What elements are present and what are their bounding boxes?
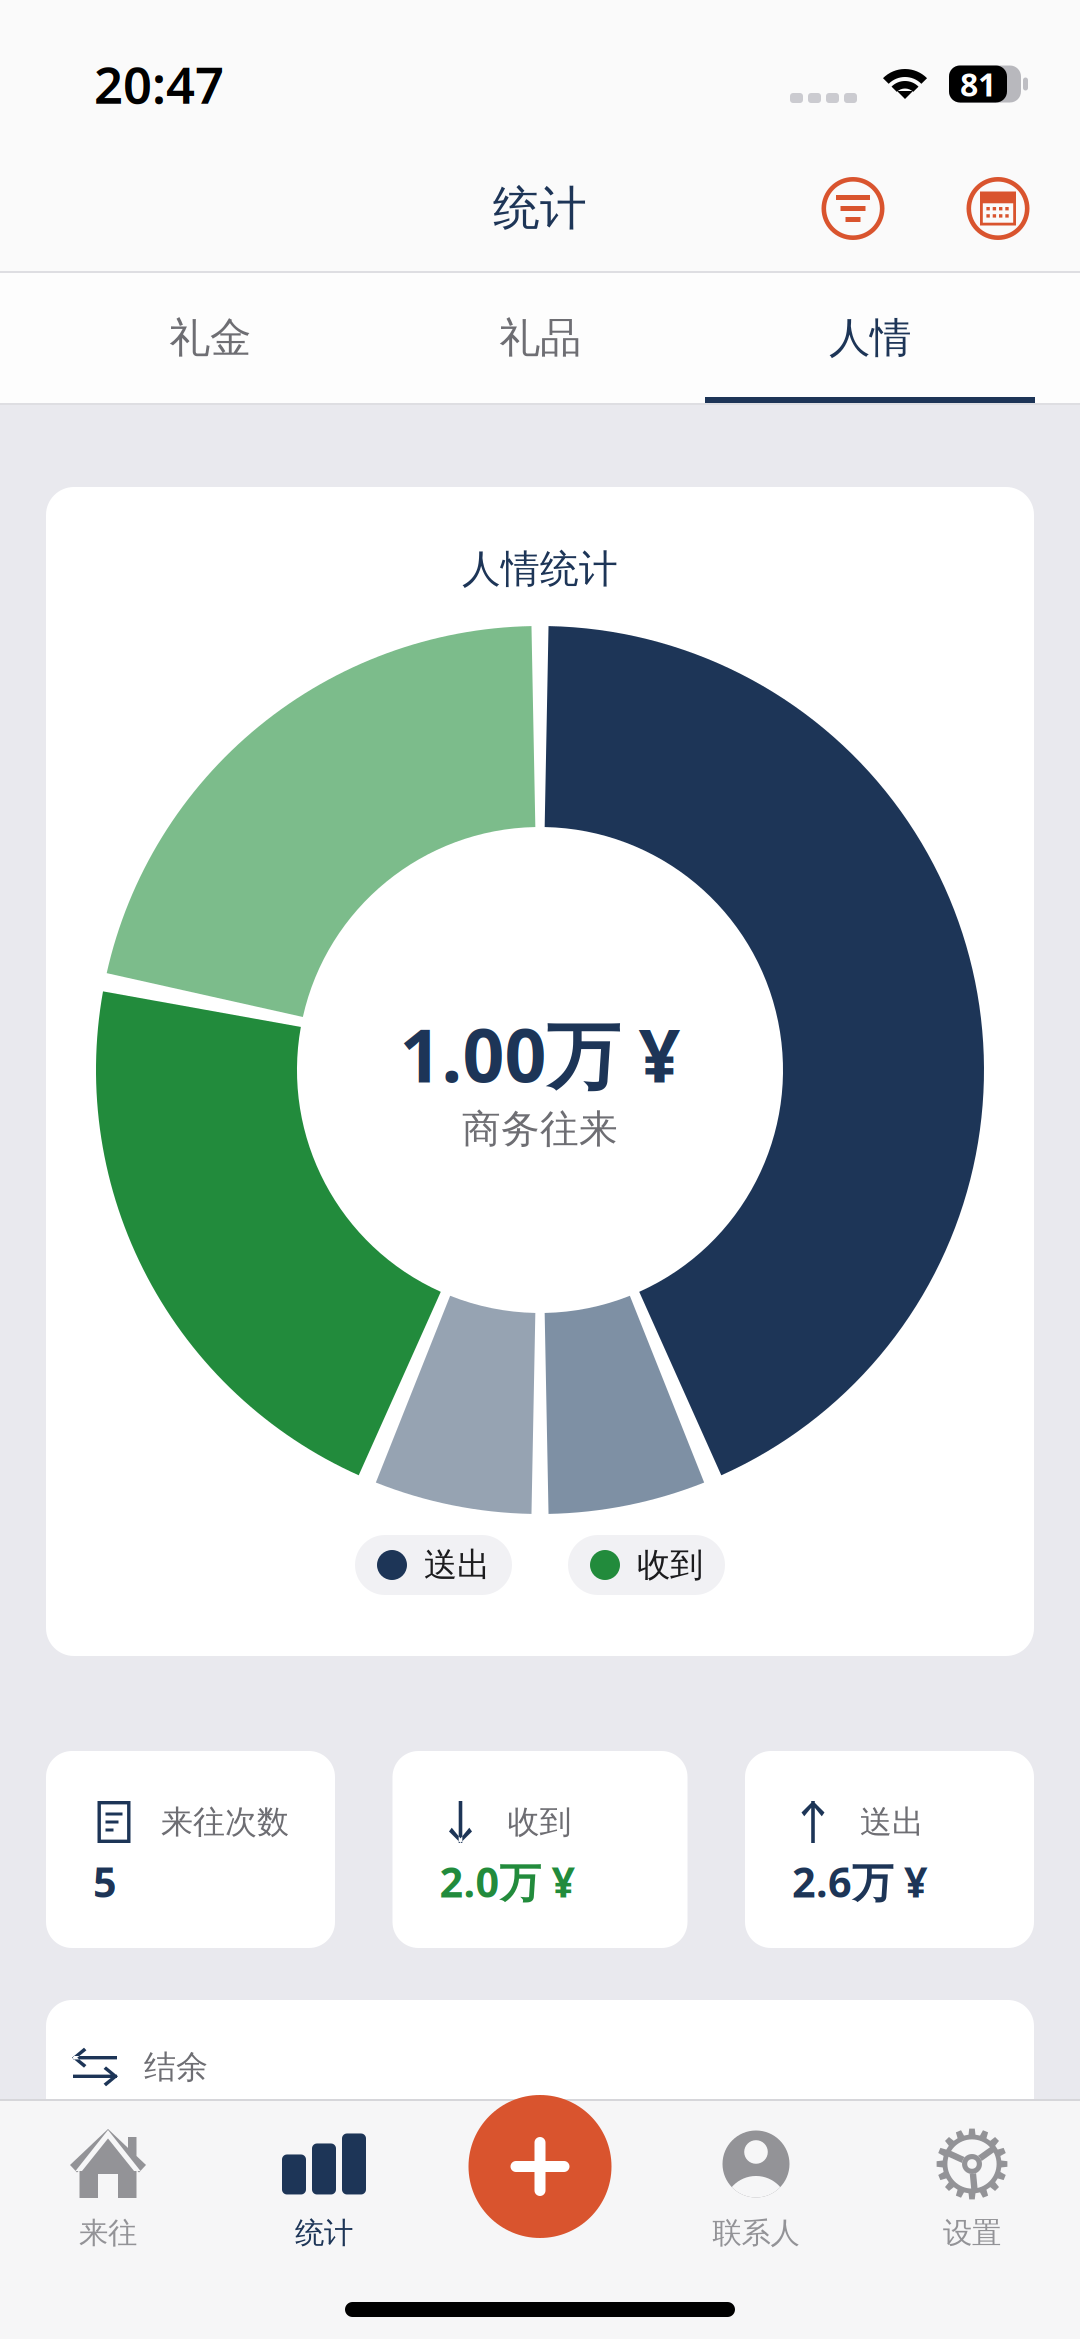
staticText: 1.00万 ¥	[399, 1005, 680, 1103]
staticText: 联系人	[712, 2215, 799, 2251]
staticText: 2.0万 ¥	[439, 1854, 575, 1909]
staticText: 结余	[144, 2047, 208, 2087]
staticText: 来往	[79, 2215, 137, 2251]
button[interactable]: 设置	[864, 2119, 1080, 2259]
staticText: 统计	[295, 2215, 353, 2251]
button[interactable]: 礼金	[45, 273, 375, 403]
button[interactable]: 来往次数	[46, 1751, 335, 1948]
button[interactable]: Calendar	[946, 156, 1050, 260]
staticText: 商务往来	[462, 1105, 618, 1153]
staticText: 设置	[943, 2215, 1001, 2251]
staticText: 礼品	[499, 313, 581, 363]
staticText: 人情	[829, 313, 911, 363]
button[interactable]: 统计	[216, 2119, 432, 2259]
button[interactable]: 礼品	[375, 273, 705, 403]
button[interactable]: Filter	[801, 156, 905, 260]
staticText: 送出	[860, 1802, 924, 1842]
staticText: 收到	[637, 1544, 703, 1585]
staticText: 统计	[493, 180, 587, 237]
staticText: 来往次数	[161, 1802, 289, 1842]
staticText: 81	[960, 63, 996, 105]
button[interactable]: 人情	[705, 273, 1035, 403]
staticText: 收到	[507, 1802, 571, 1842]
staticText: 2.6万 ¥	[792, 1854, 928, 1909]
staticText: 20:47	[94, 50, 224, 118]
staticText: 5	[93, 1854, 117, 1909]
staticText: 送出	[424, 1544, 490, 1585]
staticText: 人情统计	[462, 545, 618, 593]
button[interactable]: Add	[468, 2095, 611, 2238]
button[interactable]: 送出	[745, 1751, 1034, 1948]
button[interactable]: 联系人	[648, 2119, 864, 2259]
staticText: 礼金	[169, 313, 251, 363]
button[interactable]: 收到	[392, 1751, 687, 1948]
button[interactable]: 来往	[0, 2119, 216, 2259]
